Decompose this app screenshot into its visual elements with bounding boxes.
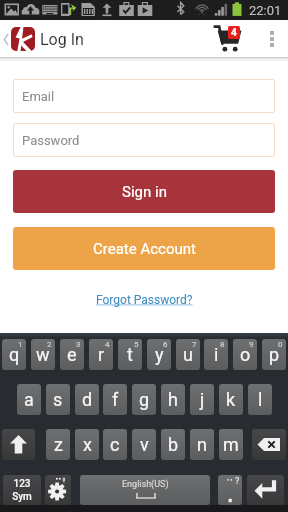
button[interactable]: Settings and voice input [45,475,71,505]
button[interactable]: i [204,339,228,370]
staticText: t [127,344,133,365]
staticText: c [110,434,120,455]
staticText: 7 [192,340,197,349]
button[interactable]: x [75,429,99,460]
button[interactable]: o [233,339,257,370]
staticText: z [54,434,63,455]
staticText: v [140,434,149,455]
button[interactable]: h [161,384,185,415]
button[interactable]: Password [13,123,275,157]
staticText: Create Account [93,240,196,258]
button[interactable]: y [147,339,171,370]
button[interactable]: s [46,384,70,415]
button[interactable]: v [132,429,156,460]
staticText: y [155,344,164,365]
button[interactable]: Forgot Password? [90,291,199,309]
button[interactable]: l [248,384,272,415]
button[interactable]: d [75,384,99,415]
button[interactable]: n [190,429,214,460]
button[interactable]: Sign in [13,170,275,213]
staticText: 5 [134,340,139,349]
button[interactable]: Shopping cart, 4 items [207,20,252,57]
staticText: a [24,389,34,410]
button[interactable]: g [132,384,156,415]
staticText: 6 [163,340,168,349]
staticText: x [83,434,92,455]
staticText: e [67,344,77,365]
staticText: q [9,344,20,365]
button[interactable]: t [118,339,142,370]
button[interactable]: 123 Sym [3,475,41,505]
button[interactable]: j [190,384,214,415]
staticText: Log In [40,30,84,49]
staticText: Password [22,133,80,148]
staticText: Email [22,89,55,104]
staticText: 4 [105,340,110,349]
button[interactable]: Log In [0,27,84,51]
staticText: g [139,389,150,410]
staticText: 3 [76,340,81,349]
staticText: u [183,344,193,365]
button[interactable]: m [219,429,243,460]
staticText: f [112,389,119,410]
button[interactable]: Backspace [252,429,286,460]
staticText: s [53,389,63,410]
staticText: 123 Sym [12,478,32,502]
staticText: 9 [249,340,254,349]
staticText: p [269,344,280,365]
staticText: k [226,389,236,410]
staticText: English(US) [122,479,169,490]
staticText: 0 [278,340,283,349]
staticText: b [168,434,179,455]
button[interactable]: z [46,429,70,460]
button[interactable]: Shift [2,429,35,460]
staticText: m [223,434,239,455]
button[interactable]: Space [80,475,210,505]
button[interactable]: e [60,339,84,370]
button[interactable]: Email [13,79,275,113]
button[interactable]: c [103,429,127,460]
button[interactable]: a [17,384,41,415]
button[interactable]: b [161,429,185,460]
button[interactable]: q [2,339,26,370]
staticText: l [258,389,263,410]
staticText: 8 [220,340,225,349]
button[interactable]: u [176,339,200,370]
staticText: w [36,344,50,365]
button[interactable]: r [89,339,113,370]
staticText: d [82,389,93,410]
staticText: o [240,344,251,365]
button[interactable]: w [31,339,55,370]
staticText: 22:01 [249,3,282,18]
staticText: h [168,389,178,410]
button[interactable]: Enter [247,475,284,505]
staticText: 2 [47,340,52,349]
staticText: 1 [18,340,23,349]
staticText: n [197,434,207,455]
staticText: i [214,344,219,365]
staticText: Sign in [122,183,167,201]
staticText: ? [235,476,240,487]
button[interactable]: k [219,384,243,415]
staticText: j [200,389,205,410]
button[interactable]: p [262,339,286,370]
button[interactable]: f [103,384,127,415]
button[interactable]: Period [218,475,242,505]
button[interactable]: More options [256,20,288,57]
staticText: r [98,344,105,365]
staticText: 4 [231,27,237,39]
button[interactable]: Create Account [13,227,275,270]
